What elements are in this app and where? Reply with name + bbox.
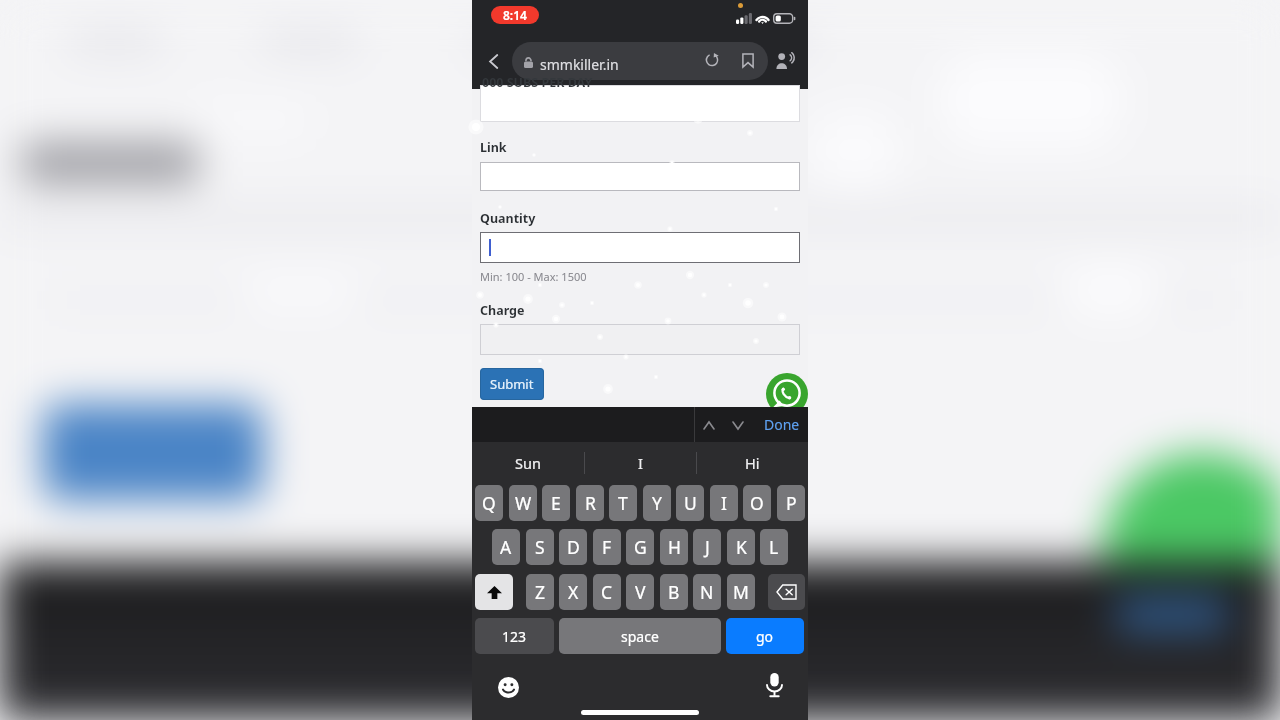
staticText: Min: 100 - Max: 1500	[480, 269, 587, 284]
button[interactable]: H	[660, 529, 688, 565]
button[interactable]: go	[726, 618, 804, 654]
button[interactable]: X	[559, 574, 587, 610]
button[interactable]	[480, 232, 800, 263]
button[interactable]: I	[710, 485, 738, 521]
staticText: go	[756, 627, 774, 646]
button[interactable]: Emoji keyboard	[494, 673, 522, 701]
staticText: R	[585, 491, 596, 515]
button[interactable]: Previous field	[696, 412, 722, 438]
button[interactable]: Dictation	[760, 671, 788, 699]
button[interactable]: Shift	[475, 574, 513, 610]
staticText: J	[705, 535, 710, 559]
staticText: K	[736, 535, 747, 559]
staticText: Charge	[480, 302, 525, 319]
staticText: smmkiller.in	[540, 55, 619, 74]
staticText: Sun	[515, 453, 541, 473]
staticText: 8:14	[503, 7, 527, 23]
button[interactable]: R	[576, 485, 604, 521]
staticText: 000 SUBS PER DAY	[482, 74, 593, 88]
button[interactable]: J	[693, 529, 721, 565]
staticText: W	[515, 491, 532, 515]
button[interactable]: T	[609, 485, 637, 521]
button[interactable]: M	[727, 574, 755, 610]
staticText: X	[568, 580, 579, 604]
button[interactable]: Submit	[480, 368, 544, 400]
button[interactable]: S	[526, 529, 554, 565]
button[interactable]: Bookmark	[736, 48, 760, 72]
staticText: Done	[764, 415, 800, 434]
button[interactable]: L	[760, 529, 788, 565]
staticText: P	[786, 491, 797, 515]
button[interactable]: Q	[475, 485, 503, 521]
button[interactable]: F	[593, 529, 621, 565]
button[interactable]: E	[542, 485, 570, 521]
button[interactable]: P	[777, 485, 805, 521]
button[interactable]: Hi	[696, 442, 808, 484]
staticText: C	[601, 580, 613, 604]
staticText: V	[635, 580, 646, 604]
button[interactable]: D	[559, 529, 587, 565]
staticText: L	[769, 535, 779, 559]
button[interactable]: A	[492, 529, 520, 565]
staticText: I	[638, 453, 643, 473]
staticText: E	[551, 491, 561, 515]
button[interactable]: Y	[643, 485, 671, 521]
staticText: Hi	[745, 453, 760, 473]
staticText: Z	[535, 580, 546, 604]
button[interactable]	[480, 162, 800, 191]
button[interactable]: Reload	[700, 48, 724, 72]
staticText: Q	[482, 491, 496, 515]
button[interactable]	[480, 324, 800, 355]
button[interactable]: Read aloud	[772, 47, 799, 74]
button[interactable]: space	[559, 618, 721, 654]
button[interactable]: K	[727, 529, 755, 565]
staticText: space	[621, 627, 659, 646]
staticText: U	[684, 491, 697, 515]
button[interactable]: Backspace	[768, 574, 805, 610]
staticText: M	[733, 580, 749, 604]
staticText: S	[535, 535, 545, 559]
staticText: A	[500, 535, 512, 559]
staticText: Submit	[490, 375, 534, 393]
staticText: O	[750, 491, 764, 515]
button[interactable]: Next field	[725, 412, 751, 438]
staticText: G	[634, 535, 647, 559]
button[interactable]: I	[584, 442, 696, 484]
button[interactable]: O	[743, 485, 771, 521]
staticText: 123	[502, 627, 527, 646]
button[interactable]: U	[676, 485, 704, 521]
button[interactable]: N	[693, 574, 721, 610]
staticText: I	[721, 491, 727, 515]
button[interactable]: Back	[480, 48, 506, 74]
button[interactable]: Done	[762, 412, 802, 437]
staticText: Link	[480, 139, 507, 156]
staticText: B	[668, 580, 680, 604]
button[interactable]: Sun	[472, 442, 584, 484]
staticText: H	[668, 535, 681, 559]
staticText: T	[618, 491, 628, 515]
button[interactable]: 123	[475, 618, 554, 654]
staticText: D	[567, 535, 580, 559]
staticText: Quantity	[480, 210, 536, 227]
button[interactable]: Z	[526, 574, 554, 610]
button[interactable]: V	[626, 574, 654, 610]
staticText: F	[602, 535, 612, 559]
staticText: Y	[652, 491, 662, 515]
staticText: N	[700, 580, 714, 604]
button[interactable]: WhatsApp	[766, 373, 808, 415]
button[interactable]: W	[509, 485, 537, 521]
button[interactable]: G	[626, 529, 654, 565]
button[interactable]	[512, 42, 768, 80]
button[interactable]: B	[660, 574, 688, 610]
button[interactable]: C	[593, 574, 621, 610]
